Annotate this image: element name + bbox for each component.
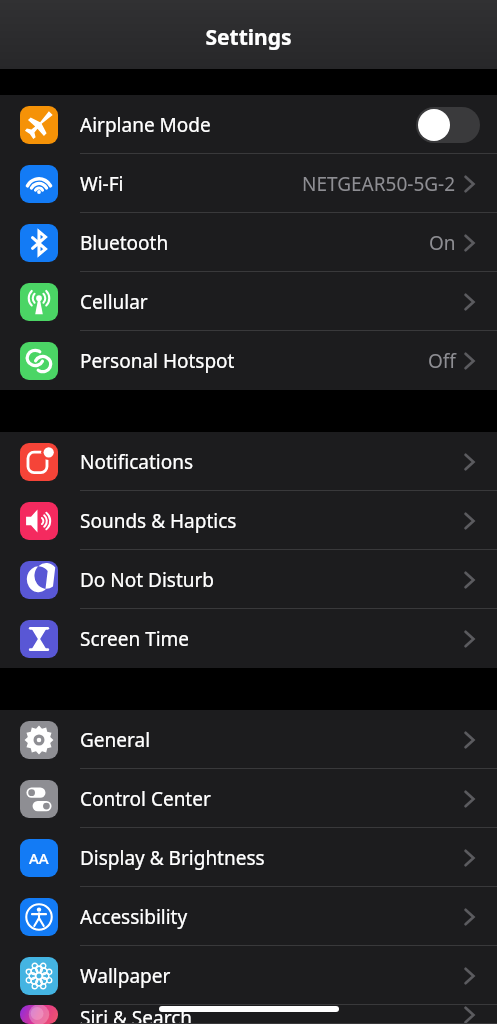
- staticText: Notifications: [80, 449, 194, 475]
- staticText: Bluetooth: [80, 230, 169, 256]
- staticText: AA: [29, 848, 49, 868]
- staticText: Accessibility: [80, 904, 188, 930]
- staticText: Off: [428, 348, 456, 374]
- button[interactable]: Siri & Search: [0, 1005, 497, 1024]
- button[interactable]: Control Center: [0, 769, 497, 828]
- staticText: Control Center: [80, 786, 211, 812]
- staticText: Personal Hotspot: [80, 348, 235, 374]
- button[interactable]: Wi-Fi: [0, 154, 497, 213]
- staticText: NETGEAR50-5G-2: [302, 171, 456, 197]
- staticText: On: [429, 230, 456, 256]
- staticText: Cellular: [80, 289, 148, 315]
- staticText: Wi-Fi: [80, 171, 124, 197]
- staticText: Siri & Search: [80, 1005, 193, 1024]
- button[interactable]: Notifications: [0, 432, 497, 491]
- button[interactable]: AA: [0, 828, 497, 887]
- button[interactable]: Personal Hotspot: [0, 331, 497, 390]
- button[interactable]: Airplane Mode toggle, off: [416, 107, 480, 143]
- button[interactable]: Cellular: [0, 272, 497, 331]
- staticText: Sounds & Haptics: [80, 508, 237, 534]
- staticText: Display & Brightness: [80, 845, 265, 871]
- button[interactable]: Bluetooth: [0, 213, 497, 272]
- button[interactable]: Airplane Mode: [0, 95, 497, 154]
- staticText: Wallpaper: [80, 963, 171, 989]
- button[interactable]: Screen Time: [0, 609, 497, 668]
- staticText: Settings: [205, 23, 292, 52]
- button[interactable]: Sounds & Haptics: [0, 491, 497, 550]
- staticText: Screen Time: [80, 626, 190, 652]
- staticText: Do Not Disturb: [80, 567, 215, 593]
- staticText: General: [80, 727, 151, 753]
- button[interactable]: General: [0, 710, 497, 769]
- button[interactable]: Accessibility: [0, 887, 497, 946]
- staticText: Airplane Mode: [80, 112, 211, 138]
- button[interactable]: Wallpaper: [0, 946, 497, 1005]
- button[interactable]: Do Not Disturb: [0, 550, 497, 609]
